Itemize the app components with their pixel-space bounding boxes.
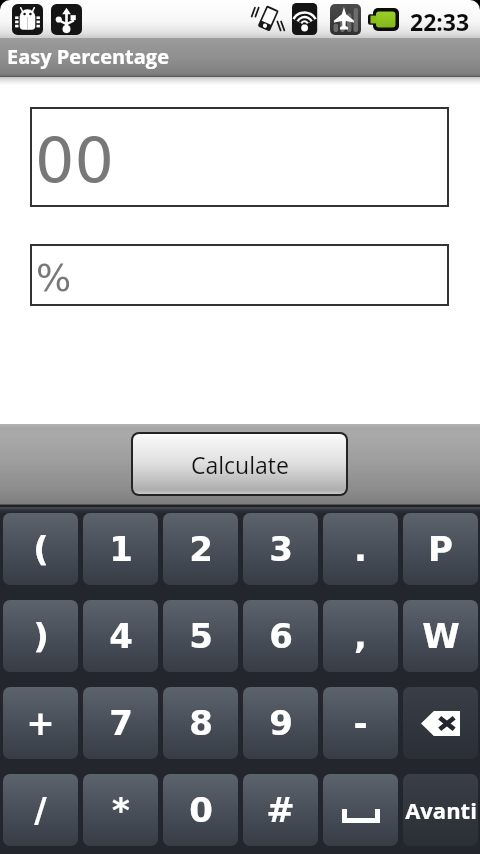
button[interactable]: Space (323, 774, 398, 846)
button[interactable]: Calculate (133, 434, 346, 494)
staticText: , (354, 616, 367, 656)
button[interactable]: 5 (163, 600, 238, 672)
button[interactable]: % (32, 246, 447, 304)
staticText: 00 (35, 124, 114, 196)
staticText: 6 (269, 616, 293, 656)
button[interactable]: 0 (163, 774, 238, 846)
staticText: % (36, 257, 72, 300)
button[interactable]: 00 (32, 109, 447, 205)
staticText: 5 (189, 616, 213, 656)
staticText: Easy Percentage (7, 43, 169, 70)
button[interactable]: + (3, 687, 78, 759)
button[interactable]: P (403, 513, 478, 585)
button[interactable]: 7 (83, 687, 158, 759)
staticText: W (422, 616, 460, 656)
staticText: Avanti (405, 795, 477, 825)
button[interactable]: 9 (243, 687, 318, 759)
staticText: + (26, 703, 55, 743)
button[interactable]: 1 (83, 513, 158, 585)
staticText: - (353, 703, 368, 743)
button[interactable]: # (243, 774, 318, 846)
staticText: / (34, 790, 47, 830)
button[interactable]: 3 (243, 513, 318, 585)
button[interactable]: . (323, 513, 398, 585)
staticText: ) (33, 616, 49, 656)
button[interactable]: 4 (83, 600, 158, 672)
staticText: # (266, 790, 295, 830)
button[interactable]: ( (3, 513, 78, 585)
staticText: Calculate (191, 449, 289, 480)
staticText: * (112, 790, 130, 830)
button[interactable]: Avanti (403, 774, 478, 846)
button[interactable]: / (3, 774, 78, 846)
staticText: 1 (109, 529, 133, 569)
staticText: ( (33, 529, 49, 569)
button[interactable]: W (403, 600, 478, 672)
staticText: 2 (189, 529, 213, 569)
staticText: P (428, 529, 453, 569)
staticText: 22:33 (410, 6, 470, 37)
button[interactable]: 2 (163, 513, 238, 585)
staticText: 0 (189, 790, 213, 830)
button[interactable]: 6 (243, 600, 318, 672)
button[interactable]: * (83, 774, 158, 846)
button[interactable]: - (323, 687, 398, 759)
staticText: 9 (269, 703, 293, 743)
staticText: . (354, 529, 367, 569)
button[interactable]: , (323, 600, 398, 672)
staticText: 3 (269, 529, 293, 569)
button[interactable]: Delete (403, 687, 478, 759)
staticText: 4 (109, 616, 133, 656)
button[interactable]: 8 (163, 687, 238, 759)
button[interactable]: ) (3, 600, 78, 672)
staticText: 7 (109, 703, 133, 743)
staticText: 8 (189, 703, 213, 743)
